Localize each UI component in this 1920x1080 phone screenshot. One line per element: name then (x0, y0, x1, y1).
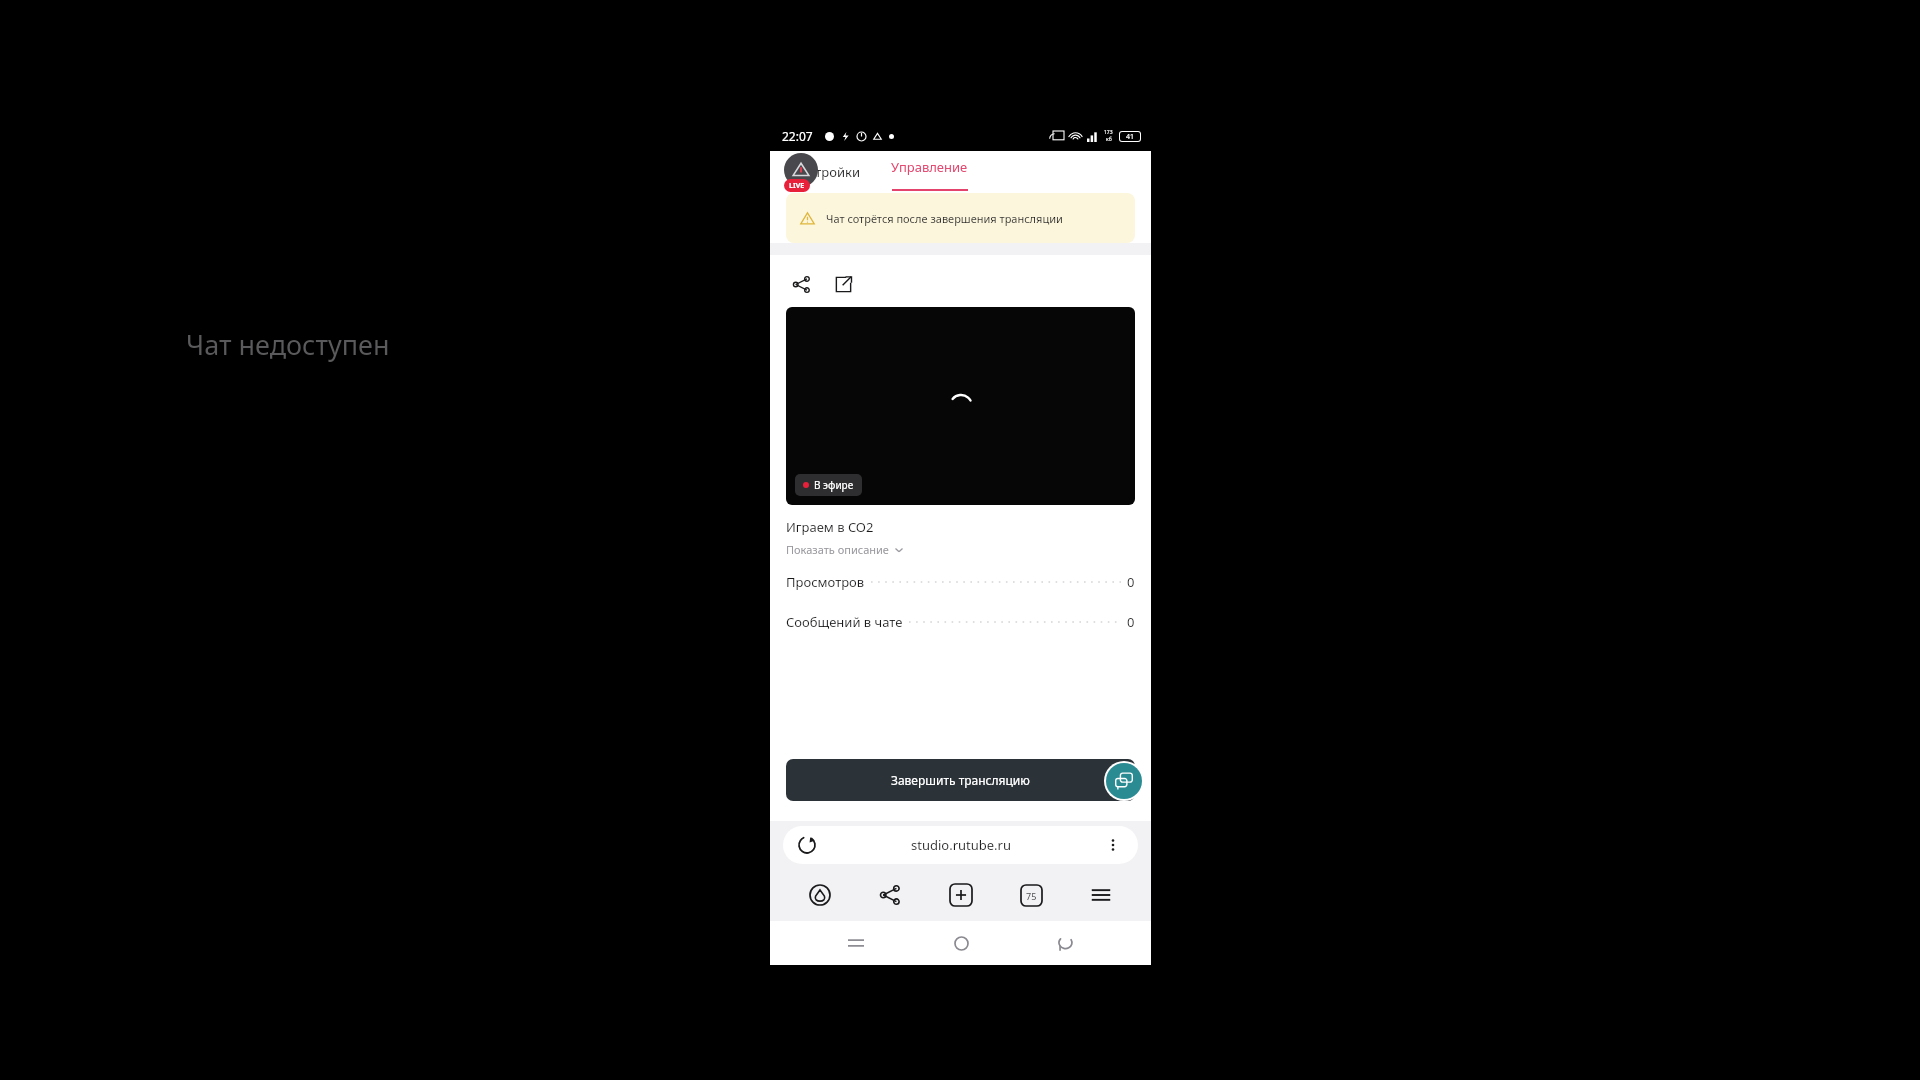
staticText: Чат сотрётся после завершения трансляции (826, 211, 1063, 226)
staticText: 75 (1026, 890, 1037, 902)
button[interactable]: Home (800, 875, 840, 915)
button[interactable]: Home (942, 924, 980, 962)
button[interactable]: Показать описание (786, 542, 904, 557)
button[interactable]: Завершить трансляцию (786, 759, 1135, 801)
staticText: В эфире (814, 478, 854, 492)
staticText: Чат недоступен (186, 326, 390, 363)
button[interactable]: Recents (837, 924, 875, 962)
button[interactable]: More options (1101, 833, 1125, 857)
staticText: 0 (1127, 573, 1135, 591)
staticText: 173 (1104, 129, 1113, 136)
button[interactable]: Настройки (788, 155, 865, 189)
staticText: Завершить трансляцию (891, 772, 1030, 788)
button[interactable]: Share page (870, 875, 910, 915)
staticText: 41 (1126, 132, 1135, 142)
button[interactable]: Reload (795, 833, 819, 857)
button[interactable]: Back (1046, 924, 1084, 962)
staticText: Настройки (792, 163, 861, 181)
staticText: Играем в CO2 (786, 518, 874, 536)
button[interactable]: New tab (941, 875, 981, 915)
button[interactable]: Reload (783, 826, 1138, 864)
button[interactable]: Управление (887, 154, 972, 191)
staticText: 0 (1127, 613, 1135, 631)
staticText: Показать описание (786, 542, 889, 557)
staticText: Просмотров (786, 573, 865, 591)
button[interactable]: Tabs (1011, 875, 1051, 915)
staticText: Сообщений в чате (786, 613, 903, 631)
staticText: studio.rutube.ru (911, 836, 1011, 854)
button[interactable]: Chat (1106, 763, 1142, 799)
staticText: Управление (891, 158, 968, 176)
staticText: кб (1106, 136, 1112, 143)
staticText: 22:07 (782, 128, 813, 144)
staticText: LIVE (789, 181, 805, 191)
button[interactable]: Menu (1081, 875, 1121, 915)
button[interactable]: Open external (828, 269, 858, 299)
button[interactable]: Channel avatar (784, 153, 818, 187)
button[interactable]: Share (786, 269, 816, 299)
